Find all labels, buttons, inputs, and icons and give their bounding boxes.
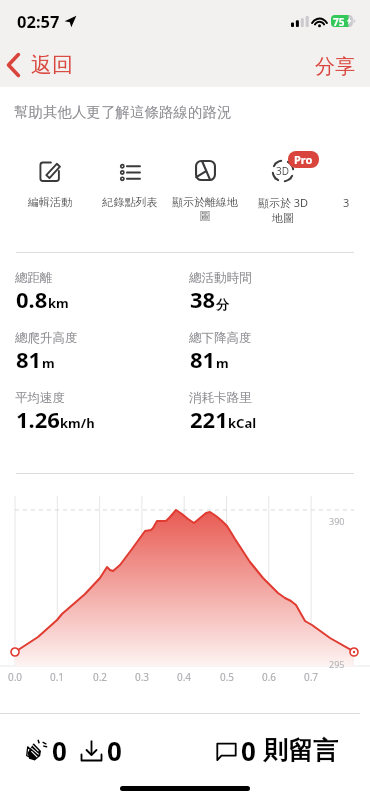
staticText: 顯示於離線地 圖 xyxy=(165,195,245,223)
button[interactable]: 0 xyxy=(79,733,122,767)
staticText: 0.4 xyxy=(164,670,204,684)
button[interactable]: 0 xyxy=(215,733,338,767)
staticText: 平均速度 xyxy=(15,390,65,406)
staticText: 分享 xyxy=(315,54,355,79)
staticText: 分 xyxy=(216,296,229,312)
staticText: km/h xyxy=(60,414,95,432)
staticText: 總活動時間 xyxy=(189,270,252,286)
staticText: 返回 xyxy=(31,52,73,78)
staticText: 總爬升高度 xyxy=(15,330,78,346)
staticText: 0.6 xyxy=(249,670,289,684)
staticText: 02:57 xyxy=(17,10,60,32)
staticText: 0.0 xyxy=(0,670,35,684)
staticText: 3D xyxy=(276,164,290,178)
staticText: 總距離 xyxy=(15,270,53,286)
staticText: km xyxy=(48,294,69,312)
staticText: 1.26 xyxy=(16,404,60,434)
button[interactable]: 紀錄點列表 xyxy=(120,162,141,183)
staticText: 總下降高度 xyxy=(189,330,252,346)
staticText: 0 xyxy=(241,733,263,767)
staticText: 顯示於 3D 地圖 xyxy=(243,195,323,225)
staticText: 81 xyxy=(190,344,216,374)
staticText: 0.2 xyxy=(80,670,120,684)
button[interactable]: 顯示於離線地圖 xyxy=(195,160,216,181)
staticText: 紀錄點列表 xyxy=(90,195,170,209)
staticText: 81 xyxy=(16,344,42,374)
button[interactable]: 分享 xyxy=(315,54,355,79)
staticText: 0.8 xyxy=(16,284,48,314)
staticText: 0.1 xyxy=(37,670,77,684)
staticText: 消耗卡路里 xyxy=(189,390,252,406)
staticText: 295 xyxy=(329,658,345,670)
staticText: 390 xyxy=(329,515,345,527)
staticText: 0 xyxy=(52,733,67,767)
staticText: 3 xyxy=(343,195,350,210)
staticText: 0.3 xyxy=(122,670,162,684)
staticText: 0.7 xyxy=(291,670,331,684)
staticText: 38 xyxy=(190,284,216,314)
staticText: 編輯活動 xyxy=(10,195,90,209)
staticText: 0 xyxy=(107,733,122,767)
button[interactable]: 編輯活動 xyxy=(40,160,61,181)
button[interactable]: 顯示於 3D 地圖 xyxy=(272,160,294,182)
button[interactable]: 返回 xyxy=(4,48,73,82)
staticText: 0.5 xyxy=(207,670,247,684)
staticText: m xyxy=(216,354,229,372)
staticText: Pro xyxy=(294,152,313,167)
staticText: 75 xyxy=(333,15,345,27)
staticText: m xyxy=(42,354,55,372)
staticText: kCal xyxy=(228,414,257,432)
staticText: 221 xyxy=(190,404,228,434)
staticText: 幫助其他人更了解這條路線的路況 xyxy=(14,103,232,121)
staticText: 則留言 xyxy=(263,735,338,766)
button[interactable]: 0 xyxy=(24,733,67,767)
